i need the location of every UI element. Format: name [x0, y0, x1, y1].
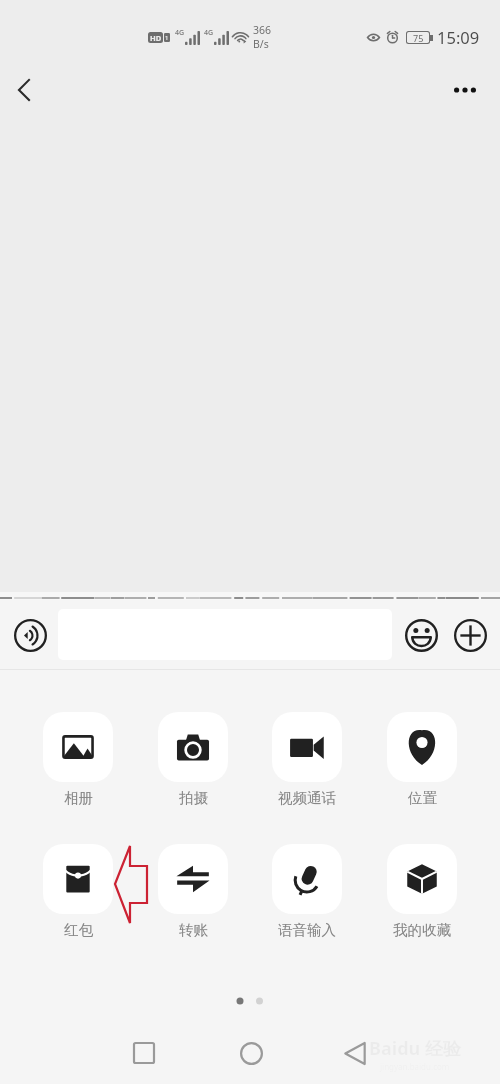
staticText: B/s [253, 37, 269, 51]
button[interactable]: 视频通话 [250, 712, 364, 807]
staticText: 拍摄 [179, 789, 208, 807]
button[interactable]: 我的收藏 [365, 844, 479, 939]
button[interactable]: 拍摄 [136, 712, 250, 807]
button[interactable]: 红包 [21, 844, 135, 939]
button[interactable]: 位置 [365, 712, 479, 807]
staticText: 视频通话 [278, 789, 336, 807]
staticText: 15:09 [437, 26, 480, 48]
staticText: HD [150, 33, 162, 43]
staticText: 语音输入 [278, 921, 336, 939]
staticText: 1 [165, 34, 169, 42]
staticText: 相册 [64, 789, 93, 807]
staticText: 75 [413, 32, 424, 43]
button[interactable]: Back [331, 1029, 379, 1077]
button[interactable]: 语音输入 [250, 844, 364, 939]
button[interactable]: Emoji [401, 615, 441, 655]
staticText: 366 [253, 23, 272, 37]
button[interactable]: Voice input [10, 615, 50, 655]
staticText: Baidu 经验 [369, 1036, 461, 1061]
button[interactable]: 转账 [136, 844, 250, 939]
button[interactable]: Back [0, 66, 48, 114]
button[interactable]: 相册 [21, 712, 135, 807]
button[interactable]: Recent apps [120, 1029, 168, 1077]
staticText: 4G [175, 28, 185, 38]
staticText: 4G [204, 28, 214, 38]
staticText: 红包 [64, 921, 93, 939]
staticText: 位置 [408, 789, 437, 807]
button[interactable]: Home [227, 1029, 275, 1077]
staticText: 我的收藏 [393, 921, 451, 939]
button[interactable]: More options [441, 66, 489, 114]
button[interactable]: More functions [450, 615, 490, 655]
staticText: 转账 [179, 921, 208, 939]
